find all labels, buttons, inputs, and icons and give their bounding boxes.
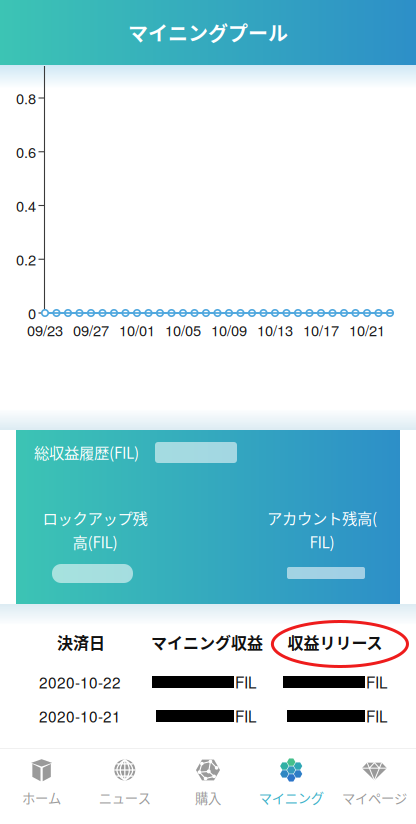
staticText: マイページ — [342, 788, 407, 807]
staticText: 10/05 — [165, 319, 201, 340]
staticText: 10/21 — [349, 319, 385, 340]
staticText: FIL — [235, 705, 257, 727]
staticText: 総収益履歴(FIL) — [34, 441, 139, 463]
staticText: FIL — [366, 705, 388, 727]
staticText: 2020-10-21 — [39, 705, 121, 727]
staticText: 10/13 — [257, 319, 293, 340]
staticText: アカウント残高( — [267, 506, 377, 529]
staticText: マイニングプール — [128, 18, 288, 47]
staticText: 0.6 — [16, 141, 36, 162]
staticText: 09/27 — [73, 319, 109, 340]
button[interactable]: 購入 — [166, 748, 250, 818]
staticText: 購入 — [195, 788, 221, 807]
button[interactable]: マイニング — [250, 748, 333, 818]
staticText: ホーム — [22, 788, 61, 807]
staticText: マイニング収益 — [151, 630, 263, 654]
staticText: FIL) — [309, 530, 334, 553]
staticText: 収益リリース — [287, 630, 382, 654]
staticText: マイニング — [259, 788, 324, 807]
staticText: 09/23 — [27, 319, 63, 340]
staticText: 2020-10-22 — [39, 671, 121, 693]
staticText: 決済日 — [57, 630, 105, 654]
button[interactable]: マイページ — [333, 748, 416, 818]
button[interactable]: ホーム — [0, 748, 83, 818]
staticText: 0.2 — [16, 249, 36, 270]
staticText: ニュース — [99, 788, 151, 807]
staticText: 高(FIL) — [72, 530, 117, 553]
staticText: 0 — [28, 302, 36, 323]
staticText: 10/17 — [303, 319, 339, 340]
button[interactable]: ニュース — [83, 748, 166, 818]
staticText: 10/09 — [211, 319, 247, 340]
staticText: FIL — [366, 671, 388, 693]
staticText: FIL — [235, 671, 257, 693]
staticText: ロックアップ残 — [42, 506, 147, 529]
staticText: 0.4 — [16, 195, 36, 216]
staticText: 10/01 — [119, 319, 155, 340]
staticText: 0.8 — [16, 87, 36, 108]
